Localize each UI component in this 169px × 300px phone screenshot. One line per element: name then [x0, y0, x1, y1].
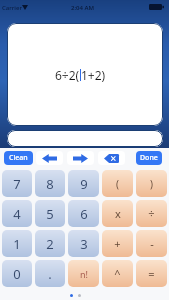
button[interactable]: 5 — [35, 200, 65, 227]
button[interactable]: 3 — [68, 230, 99, 257]
button[interactable]: ( — [102, 170, 133, 197]
staticText: 2 — [46, 235, 54, 253]
staticText: = — [148, 266, 155, 281]
button[interactable]: x — [102, 200, 133, 227]
staticText: Done — [140, 153, 158, 163]
button[interactable]: + — [102, 230, 133, 257]
button[interactable]: Clean — [4, 151, 33, 165]
staticText: 0 — [13, 265, 21, 283]
button[interactable] — [67, 151, 94, 165]
button[interactable]: 0 — [2, 260, 32, 287]
staticText: ^ — [114, 266, 121, 281]
staticText: 4 — [13, 205, 21, 223]
button[interactable]: 8 — [35, 170, 65, 197]
button[interactable]: 9 — [68, 170, 99, 197]
staticText: . — [48, 265, 52, 283]
button[interactable]: n! — [68, 260, 99, 287]
button[interactable]: ÷ — [136, 200, 167, 227]
staticText: 8 — [46, 175, 54, 193]
button[interactable] — [36, 151, 63, 165]
staticText: + — [114, 236, 121, 251]
button[interactable] — [98, 151, 125, 165]
staticText: - — [150, 236, 154, 251]
staticText: Carrier — [2, 4, 22, 12]
staticText: 1+2) — [81, 67, 106, 83]
staticText: ÷ — [148, 206, 155, 221]
staticText: ( — [116, 177, 119, 191]
button[interactable]: Done — [136, 151, 162, 165]
staticText: 6 — [80, 205, 88, 223]
button[interactable]: ) — [136, 170, 167, 197]
staticText: x — [115, 206, 121, 221]
staticText: Clean — [9, 153, 28, 163]
button[interactable]: - — [136, 230, 167, 257]
button[interactable]: 4 — [2, 200, 32, 227]
button[interactable]: . — [35, 260, 65, 287]
button[interactable]: 6 — [68, 200, 99, 227]
button[interactable]: 2 — [35, 230, 65, 257]
staticText: 2:04 AM — [71, 4, 95, 12]
button[interactable]: ^ — [102, 260, 133, 287]
staticText: 7 — [13, 175, 21, 193]
staticText: 3 — [80, 235, 88, 253]
button[interactable]: 7 — [2, 170, 32, 197]
staticText: 5 — [46, 205, 54, 223]
staticText: n! — [80, 268, 88, 280]
staticText: 6÷2( — [55, 67, 80, 83]
staticText: ) — [150, 177, 153, 191]
button[interactable]: = — [136, 260, 167, 287]
button[interactable]: 1 — [2, 230, 32, 257]
staticText: 1 — [13, 235, 21, 253]
staticText: 9 — [80, 175, 88, 193]
